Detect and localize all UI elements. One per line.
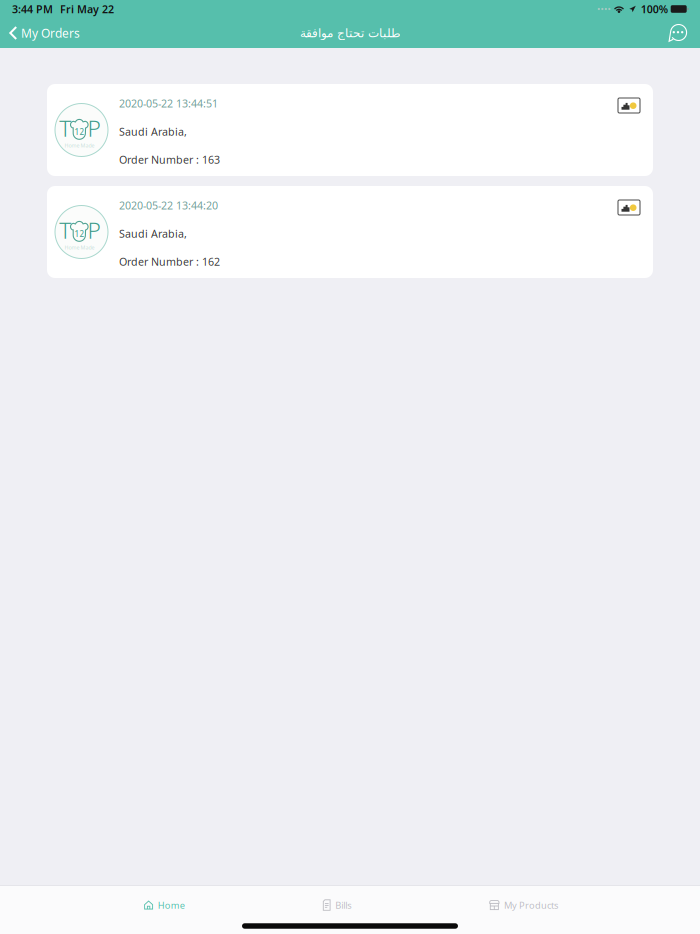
button[interactable]: My Products — [484, 895, 563, 915]
staticText: Bills — [335, 899, 351, 911]
staticText: Saudi Arabia, — [119, 226, 187, 241]
staticText: طلبات تحتاج موافقة — [299, 26, 400, 40]
staticText: My Products — [504, 899, 558, 911]
staticText: 3:44 PM — [12, 2, 53, 16]
staticText: T — [59, 215, 71, 245]
button[interactable]: Messages — [667, 18, 700, 48]
button[interactable]: Bills — [318, 895, 356, 915]
staticText: 2020-05-22 13:44:51 — [119, 96, 218, 110]
button[interactable]: Home — [139, 895, 190, 915]
staticText: P — [87, 215, 100, 245]
staticText: Home Made — [64, 142, 94, 149]
button[interactable]: T — [47, 84, 653, 176]
staticText: Order Number : 162 — [119, 255, 220, 269]
staticText: Order Number : 163 — [119, 153, 220, 167]
staticText: Home — [158, 899, 185, 911]
staticText: T — [59, 113, 71, 143]
staticText: 12 — [74, 127, 84, 137]
staticText: Saudi Arabia, — [119, 124, 187, 139]
staticText: 2020-05-22 13:44:20 — [119, 198, 218, 212]
staticText: Fri May 22 — [60, 2, 114, 16]
staticText: My Orders — [21, 25, 80, 41]
staticText: 12 — [74, 229, 84, 239]
button[interactable]: T — [47, 186, 653, 278]
staticText: 100% — [641, 2, 668, 16]
staticText: Home Made — [64, 244, 94, 251]
button[interactable]: My Orders — [0, 19, 80, 47]
staticText: P — [87, 113, 100, 143]
